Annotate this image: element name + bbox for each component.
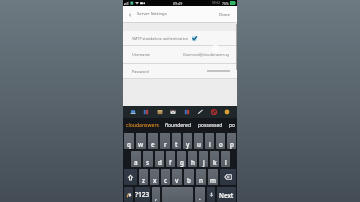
- button[interactable]: Username: [123, 46, 237, 63]
- button[interactable]: i: [205, 133, 214, 149]
- staticText: p: [230, 140, 234, 148]
- button[interactable]: j: [199, 151, 208, 167]
- button[interactable]: Back: [126, 8, 134, 21]
- staticText: t: [175, 140, 178, 148]
- button[interactable]: Backspace: [220, 169, 236, 185]
- staticText: c: [164, 176, 168, 184]
- staticText: 09:52: [212, 1, 221, 5]
- button[interactable]: q: [124, 133, 134, 149]
- staticText: h: [191, 158, 195, 166]
- staticText: k: [213, 158, 217, 166]
- staticText: Next: [219, 191, 234, 199]
- button[interactable]: d: [155, 151, 164, 167]
- button[interactable]: Emoji: [124, 187, 133, 202]
- staticText: a: [134, 158, 138, 166]
- staticText: Done: [219, 11, 230, 17]
- button[interactable]: No entry: [210, 108, 218, 116]
- staticText: e: [151, 140, 155, 148]
- staticText: l: [225, 158, 227, 166]
- button[interactable]: a: [131, 151, 141, 167]
- button[interactable]: Next: [217, 187, 236, 202]
- staticText: ,: [155, 193, 157, 201]
- button[interactable]: o: [216, 133, 225, 149]
- button[interactable]: r: [160, 133, 170, 149]
- button[interactable]: y: [183, 133, 192, 149]
- staticText: v: [175, 176, 179, 184]
- staticText: 09:49: [173, 1, 183, 6]
- staticText: i: [209, 140, 211, 148]
- staticText: z: [142, 176, 145, 184]
- staticText: cloudanswers: [126, 122, 159, 129]
- button[interactable]: g: [177, 151, 186, 167]
- staticText: w: [138, 140, 144, 148]
- button[interactable]: possessed: [194, 118, 227, 131]
- button[interactable]: Pen: [196, 108, 204, 116]
- staticText: r: [164, 140, 167, 148]
- button[interactable]: b: [184, 169, 194, 185]
- button[interactable]: cloudanswers: [123, 118, 161, 131]
- staticText: ?123: [135, 190, 150, 199]
- staticText: Dearmond@cloudanswers.sg: [183, 52, 230, 57]
- button[interactable]: t: [172, 133, 181, 149]
- button[interactable]: c: [161, 169, 170, 185]
- button[interactable]: m: [208, 169, 218, 185]
- staticText: Server Settings: [137, 11, 167, 17]
- staticText: Username: [132, 52, 150, 57]
- staticText: SMTP standalone authentication: [132, 36, 189, 41]
- staticText: possessed: [198, 122, 223, 129]
- button[interactable]: ?123: [135, 187, 150, 202]
- button[interactable]: Done: [218, 8, 231, 20]
- staticText: f: [169, 158, 172, 166]
- button[interactable]: Computer: [129, 108, 137, 116]
- button[interactable]: .: [195, 187, 205, 202]
- button[interactable]: e: [148, 133, 158, 149]
- staticText: .: [199, 193, 201, 201]
- staticText: g: [180, 158, 184, 166]
- button[interactable]: f: [166, 151, 175, 167]
- staticText: n: [199, 176, 203, 184]
- button[interactable]: w: [136, 133, 146, 149]
- button[interactable]: Books open: [183, 108, 191, 116]
- button[interactable]: [162, 187, 193, 202]
- staticText: x: [153, 176, 157, 184]
- staticText: j: [203, 158, 205, 166]
- staticText: 76%: [222, 1, 229, 6]
- button[interactable]: u: [194, 133, 203, 149]
- button[interactable]: Books: [142, 108, 150, 116]
- button[interactable]: k: [210, 151, 219, 167]
- button[interactable]: po: [227, 118, 237, 131]
- staticText: q: [127, 140, 131, 148]
- button[interactable]: v: [172, 169, 182, 185]
- button[interactable]: Shift: [124, 169, 137, 185]
- button[interactable]: ,: [152, 187, 160, 202]
- button[interactable]: h: [188, 151, 197, 167]
- staticText: o: [219, 140, 223, 148]
- button[interactable]: Mail: [169, 108, 177, 116]
- staticText: Password: [132, 69, 149, 74]
- button[interactable]: p: [227, 133, 236, 149]
- staticText: m: [210, 176, 216, 184]
- button[interactable]: z: [139, 169, 148, 185]
- button[interactable]: floundered: [161, 118, 194, 131]
- staticText: po: [229, 122, 236, 129]
- staticText: b: [187, 176, 191, 184]
- button[interactable]: Package: [156, 108, 164, 116]
- staticText: d: [158, 158, 162, 166]
- staticText: floundered: [165, 122, 191, 129]
- staticText: u: [197, 140, 201, 148]
- button[interactable]: Voice input: [207, 187, 215, 202]
- staticText: y: [186, 140, 190, 148]
- staticText: s: [146, 158, 150, 166]
- button[interactable]: Sun: [223, 108, 231, 116]
- button[interactable]: n: [196, 169, 206, 185]
- button[interactable]: x: [150, 169, 159, 185]
- button[interactable]: Password: [123, 64, 237, 78]
- button[interactable]: SMTP standalone authentication: [123, 31, 237, 45]
- button[interactable]: l: [221, 151, 230, 167]
- button[interactable]: s: [143, 151, 153, 167]
